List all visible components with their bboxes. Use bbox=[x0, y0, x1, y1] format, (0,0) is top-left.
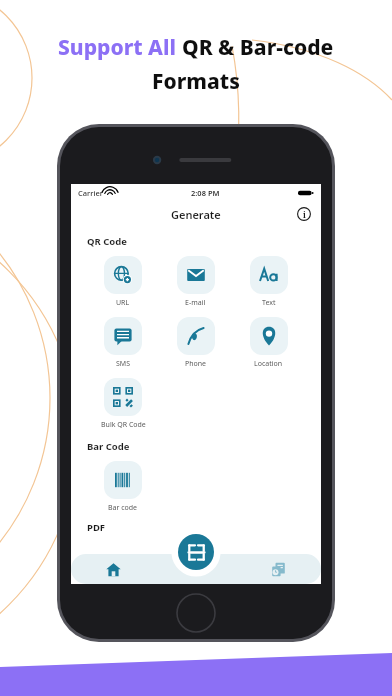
button[interactable]: Bulk QR Code bbox=[87, 378, 159, 430]
button[interactable]: Home bbox=[71, 554, 156, 584]
staticText: Text bbox=[262, 298, 276, 308]
button[interactable]: Phone bbox=[159, 317, 232, 369]
button[interactable]: URL bbox=[87, 256, 159, 308]
staticText: Bar code bbox=[108, 503, 138, 513]
staticText: Generate bbox=[171, 207, 221, 222]
button[interactable]: Bar code bbox=[87, 461, 159, 513]
staticText: Bulk QR Code bbox=[101, 420, 146, 430]
button[interactable]: Info bbox=[297, 207, 311, 221]
staticText: 2:08 PM bbox=[191, 188, 220, 198]
staticText: QR Code bbox=[87, 235, 127, 248]
staticText: Bar Code bbox=[87, 440, 130, 453]
staticText: i bbox=[303, 209, 306, 220]
staticText: Formats bbox=[152, 67, 240, 96]
button[interactable]: Text bbox=[232, 256, 305, 308]
button[interactable]: History bbox=[236, 554, 321, 584]
button[interactable]: SMS bbox=[87, 317, 159, 369]
button[interactable]: Location bbox=[232, 317, 305, 369]
staticText: Support All bbox=[58, 33, 182, 62]
button[interactable]: Scan bbox=[178, 534, 214, 570]
staticText: Carrier bbox=[78, 188, 103, 198]
staticText: QR & Bar-code bbox=[182, 33, 334, 62]
staticText: Location bbox=[254, 359, 283, 369]
staticText: PDF bbox=[87, 521, 106, 534]
staticText: E-mail bbox=[185, 298, 206, 308]
button[interactable]: E-mail bbox=[159, 256, 232, 308]
staticText: Phone bbox=[185, 359, 207, 369]
staticText: URL bbox=[116, 298, 130, 308]
staticText: SMS bbox=[116, 359, 131, 369]
